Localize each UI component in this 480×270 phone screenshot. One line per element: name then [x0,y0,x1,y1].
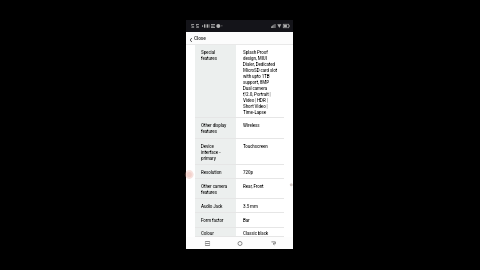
staticText: Colour [201,231,214,236]
staticText: Audio Jack [201,204,223,209]
staticText: Bar [243,218,250,223]
button[interactable]: Recent apps [199,237,215,249]
staticText: 720p [243,170,253,175]
staticText: Classic black [243,231,269,236]
button[interactable]: Back [265,237,281,249]
staticText: Touchscreen [243,144,268,149]
staticText: Device interface - primary [201,144,221,161]
button[interactable]: Home [232,237,248,249]
staticText: Other display features [201,123,227,134]
staticText: Resolution [201,170,222,175]
staticText: Wireless [243,123,260,128]
staticText: 3.5 mm [243,204,258,209]
staticText: Other camera features [201,184,228,195]
staticText: Form factor [201,218,224,223]
staticText: Splash Proof design, MIUI Dialer, Dedica… [243,50,277,115]
staticText: Close [194,35,206,41]
staticText: Special features [201,50,217,61]
staticText: Rear, Front [243,184,264,189]
button[interactable]: Close [186,32,293,45]
